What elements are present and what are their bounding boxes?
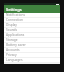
button[interactable]: Connection [4, 18, 60, 23]
staticText: Connection [6, 18, 24, 22]
button[interactable]: Accounts [4, 48, 60, 53]
staticText: Applications [6, 33, 25, 37]
button[interactable]: Privacy [4, 53, 60, 58]
staticText: Storage [6, 38, 18, 42]
staticText: Display [6, 23, 17, 27]
button[interactable]: Languages [4, 58, 60, 63]
staticText: Sounds [6, 28, 18, 32]
staticText: Battery saver [6, 43, 26, 47]
button[interactable]: Display [4, 23, 60, 28]
staticText: Accounts [6, 48, 20, 52]
staticText: Settings [6, 7, 22, 12]
button[interactable]: Applications [4, 33, 60, 38]
button[interactable]: Battery saver [4, 43, 60, 48]
staticText: Privacy [6, 53, 17, 57]
staticText: Notifications [6, 13, 25, 17]
button[interactable]: Notifications [4, 13, 60, 18]
staticText: Languages [6, 58, 23, 62]
button[interactable]: Storage [4, 38, 60, 43]
button[interactable]: Sounds [4, 28, 60, 33]
